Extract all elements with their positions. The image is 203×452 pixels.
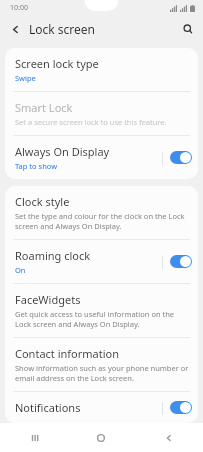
staticText: Tap to show xyxy=(15,161,58,171)
staticText: Swipe xyxy=(15,73,36,83)
button[interactable]: Back xyxy=(4,18,26,40)
staticText: Smart Lock xyxy=(15,100,73,115)
staticText: On xyxy=(15,265,26,275)
button[interactable]: Smart Lock xyxy=(5,92,198,135)
staticText: Get quick access to useful information o… xyxy=(15,309,192,329)
button[interactable]: Recents xyxy=(0,423,67,452)
staticText: Show information such as your phone numb… xyxy=(15,363,192,383)
staticText: Set a secure screen lock to use this fea… xyxy=(15,117,167,127)
button[interactable]: Back xyxy=(135,423,203,452)
button[interactable]: Clock style xyxy=(5,186,198,239)
button[interactable]: Roaming clock xyxy=(5,240,198,283)
staticText: Lock screen xyxy=(29,21,96,37)
staticText: Contact information xyxy=(15,346,119,361)
button[interactable]: Home xyxy=(67,423,135,452)
staticText: Clock style xyxy=(15,194,70,209)
staticText: Always On Display xyxy=(15,144,110,159)
button[interactable]: Contact information xyxy=(5,338,198,391)
button[interactable]: Toggle xyxy=(170,401,192,414)
staticText: 10:00 xyxy=(10,3,28,13)
staticText: Roaming clock xyxy=(15,248,91,263)
button[interactable]: FaceWidgets xyxy=(5,284,198,337)
staticText: FaceWidgets xyxy=(15,292,81,307)
button[interactable]: Screen lock type xyxy=(5,48,198,91)
button[interactable]: Always On Display xyxy=(5,136,198,179)
staticText: Screen lock type xyxy=(15,56,99,71)
button[interactable]: Search xyxy=(176,17,200,41)
button[interactable]: Notifications xyxy=(5,392,198,423)
staticText: Notifications xyxy=(15,400,81,415)
button[interactable]: Toggle xyxy=(170,151,192,164)
button[interactable]: Toggle xyxy=(170,255,192,268)
staticText: Set the type and colour for the clock on… xyxy=(15,211,192,231)
